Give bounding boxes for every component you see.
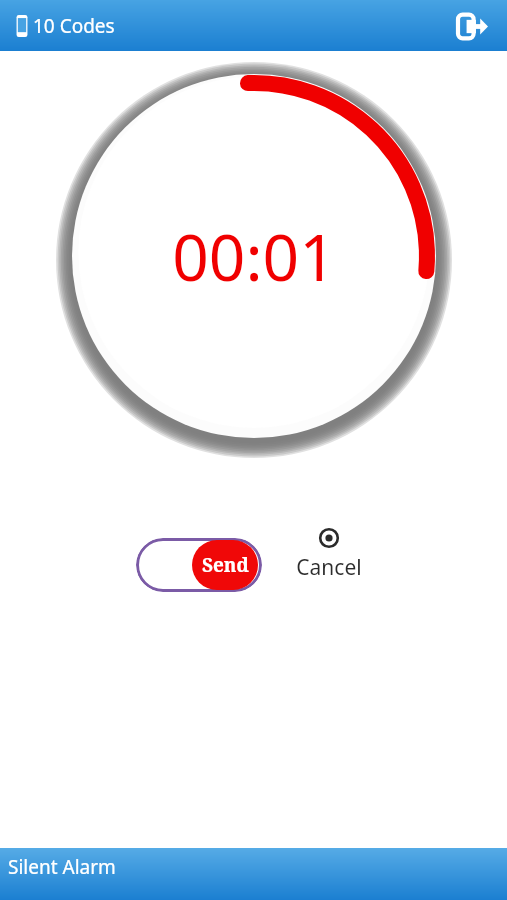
staticText: 00:01 bbox=[172, 213, 336, 300]
button[interactable]: Send bbox=[136, 538, 262, 592]
button[interactable]: Cancel bbox=[288, 528, 370, 582]
staticText: Send bbox=[202, 552, 249, 578]
button[interactable]: Log out bbox=[451, 4, 495, 48]
staticText: Cancel bbox=[296, 553, 362, 582]
button[interactable]: 10 Codes bbox=[14, 13, 115, 39]
staticText: 10 Codes bbox=[33, 13, 115, 39]
button[interactable]: Silent Alarm bbox=[0, 848, 507, 900]
staticText: Silent Alarm bbox=[8, 854, 116, 880]
